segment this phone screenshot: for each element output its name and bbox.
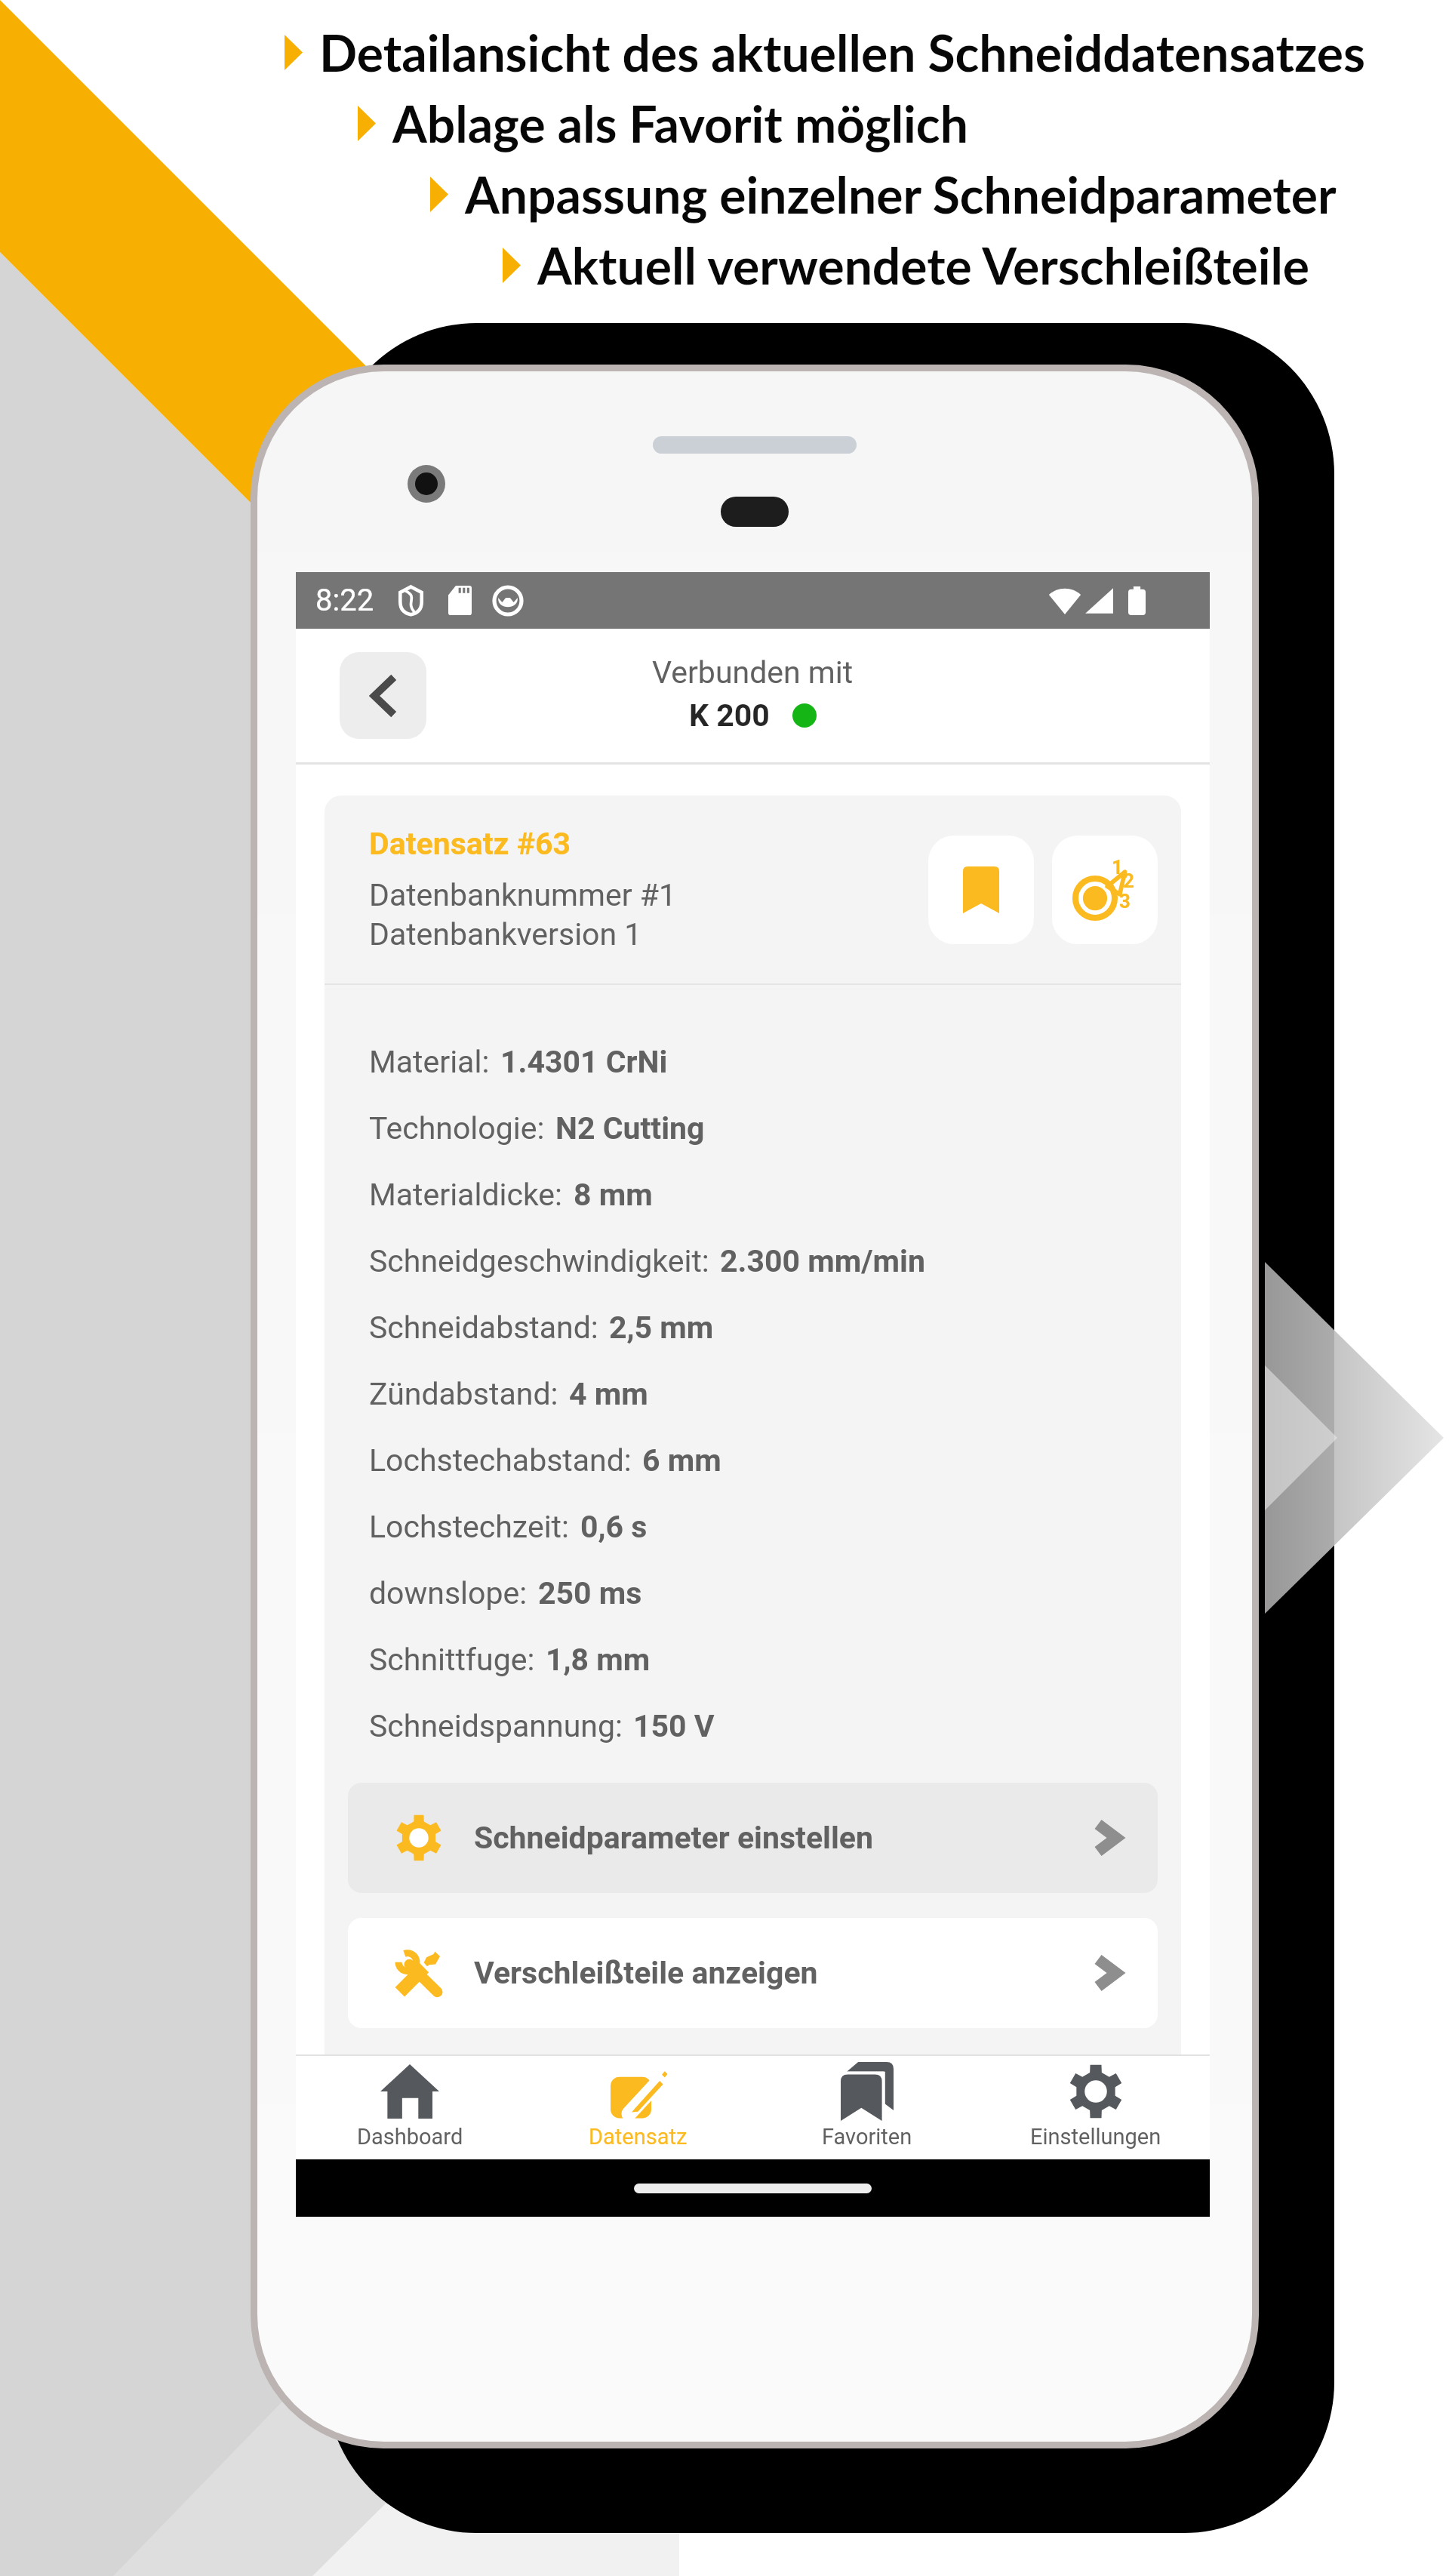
button[interactable]: Verschleißteile anzeigen: [348, 1918, 1158, 2028]
staticText: 250 ms: [538, 1575, 642, 1611]
staticText: Verschleißteile anzeigen: [474, 1955, 818, 1991]
button[interactable]: Datensatz: [524, 2056, 752, 2159]
staticText: 3: [1119, 890, 1131, 913]
staticText: Technologie:: [369, 1110, 552, 1146]
staticText: Verbunden mit: [652, 654, 854, 691]
button[interactable]: Düse auswählen: [1052, 836, 1158, 944]
staticText: Anpassung einzelner Schneidparameter: [465, 165, 1337, 224]
staticText: 1.4301 CrNi: [500, 1044, 668, 1080]
staticText: downslope:: [369, 1575, 535, 1611]
button[interactable]: Dashboard: [296, 2056, 524, 2159]
button[interactable]: Favoriten: [752, 2056, 981, 2159]
staticText: Favoriten: [822, 2124, 912, 2150]
staticText: Detailansicht des aktuellen Schneiddaten…: [319, 23, 1366, 82]
staticText: 1: [1112, 856, 1123, 879]
staticText: 4 mm: [569, 1376, 648, 1412]
button[interactable]: Schneidparameter einstellen: [348, 1783, 1158, 1893]
staticText: Datensatz: [589, 2124, 688, 2150]
button[interactable]: Favorit: [928, 836, 1034, 944]
staticText: Einstellungen: [1030, 2124, 1161, 2150]
staticText: 0,6 s: [580, 1509, 648, 1545]
staticText: Lochstechabstand:: [369, 1442, 639, 1479]
staticText: Datensatz #63: [369, 826, 571, 862]
staticText: 2: [1123, 869, 1134, 892]
staticText: Zündabstand:: [369, 1376, 566, 1412]
staticText: Aktuell verwendete Verschleißteile: [537, 235, 1310, 295]
staticText: 8 mm: [574, 1177, 653, 1213]
staticText: Dashboard: [357, 2124, 463, 2150]
staticText: Schneidabstand:: [369, 1310, 606, 1346]
staticText: Materialdicke:: [369, 1177, 571, 1213]
staticText: 2.300 mm/min: [720, 1243, 925, 1279]
staticText: Lochstechzeit:: [369, 1509, 577, 1545]
staticText: K 200: [689, 697, 770, 734]
button[interactable]: Einstellungen: [981, 2056, 1210, 2159]
staticText: Datenbankversion 1: [369, 916, 642, 953]
staticText: N2 Cutting: [555, 1110, 705, 1146]
staticText: Schneidparameter einstellen: [474, 1820, 873, 1856]
staticText: 6 mm: [642, 1442, 721, 1479]
staticText: Datenbanknummer #1: [369, 877, 676, 913]
staticText: Material:: [369, 1044, 497, 1080]
staticText: Schneidgeschwindigkeit:: [369, 1243, 717, 1279]
staticText: Schnittfuge:: [369, 1642, 543, 1678]
staticText: Schneidspannung:: [369, 1708, 630, 1744]
button[interactable]: Back: [340, 652, 426, 739]
staticText: 1,8 mm: [546, 1642, 651, 1678]
staticText: 150 V: [633, 1708, 715, 1744]
staticText: 2,5 mm: [609, 1310, 714, 1346]
staticText: 8:22: [315, 583, 374, 618]
staticText: Ablage als Favorit möglich: [392, 94, 968, 153]
